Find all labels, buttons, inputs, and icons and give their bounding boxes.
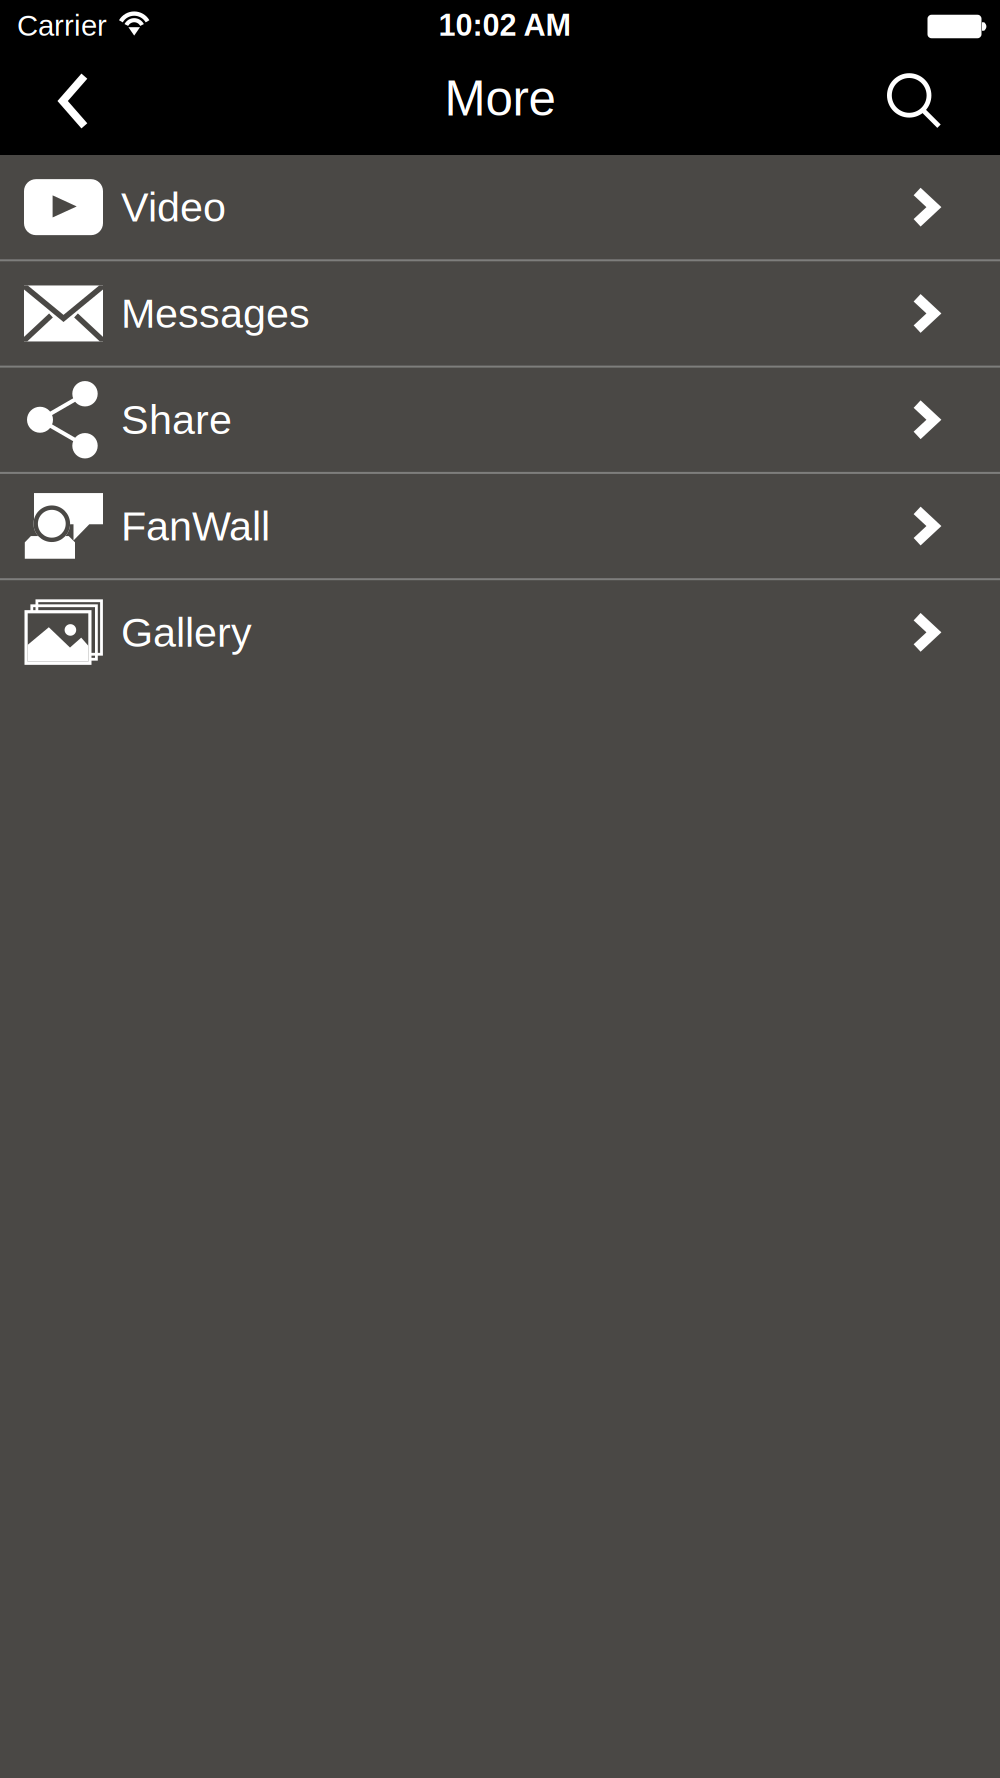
staticText: Gallery — [121, 609, 252, 655]
staticText: Share — [121, 397, 232, 443]
button[interactable]: Search — [828, 53, 1000, 155]
button[interactable]: Share — [0, 368, 1000, 472]
button[interactable]: Gallery — [0, 580, 1000, 684]
staticText: Messages — [121, 290, 310, 337]
staticText: 10:02 AM — [438, 8, 571, 42]
button[interactable]: FanWall — [0, 474, 1000, 578]
staticText: More — [444, 71, 555, 126]
staticText: Video — [121, 184, 226, 230]
button[interactable]: Back — [0, 53, 143, 155]
staticText: Carrier — [17, 9, 107, 42]
button[interactable]: Video — [0, 155, 1000, 259]
button[interactable]: Messages — [0, 261, 1000, 366]
staticText: FanWall — [121, 503, 270, 549]
